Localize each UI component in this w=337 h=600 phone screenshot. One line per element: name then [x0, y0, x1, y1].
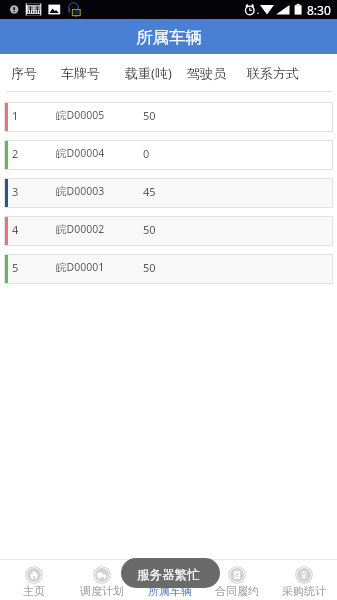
staticText: 3 [12, 184, 19, 199]
button[interactable]: 合同履约 [203, 560, 270, 600]
staticText: 合同履约 [215, 584, 259, 598]
staticText: 调度计划 [80, 584, 124, 598]
button[interactable]: 调度计划 [68, 560, 136, 600]
staticText: 载重(吨) [125, 64, 172, 82]
staticText: 皖D00004 [56, 146, 105, 160]
staticText: 4 [12, 222, 19, 237]
staticText: 50 [143, 108, 156, 123]
staticText: 联系方式 [247, 65, 299, 81]
staticText: 皖D00005 [56, 108, 105, 122]
staticText: 所属车辆 [148, 584, 192, 598]
staticText: 皖D00003 [56, 184, 105, 198]
staticText: 所属车辆 [136, 27, 202, 48]
staticText: 5 [12, 260, 19, 275]
button[interactable]: 所属车辆 [136, 560, 203, 600]
button[interactable]: 采购统计 [270, 560, 337, 600]
staticText: 驾驶员 [187, 65, 226, 81]
staticText: 皖D00002 [56, 222, 105, 236]
staticText: 序号 [11, 65, 37, 81]
button[interactable]: 主页 [0, 560, 68, 600]
button[interactable]: 2 [4, 140, 333, 170]
button[interactable]: 所属车辆 [0, 19, 337, 54]
staticText: 45 [143, 184, 156, 199]
button[interactable]: 4 [4, 216, 333, 246]
staticText: 主页 [23, 584, 45, 598]
staticText: 皖D00001 [56, 260, 105, 274]
staticText: 50 [143, 260, 156, 275]
staticText: 车牌号 [61, 65, 100, 81]
staticText: 2 [12, 146, 19, 161]
staticText: 服务器繁忙 [137, 567, 200, 583]
staticText: 采购统计 [282, 584, 326, 598]
button[interactable]: 3 [4, 178, 333, 208]
staticText: 0 [143, 146, 150, 161]
staticText: 1 [12, 108, 19, 123]
staticText: 8:30 [307, 2, 331, 18]
staticText: 50 [143, 222, 156, 237]
button[interactable]: 5 [4, 254, 333, 284]
button[interactable]: 1 [4, 102, 333, 132]
